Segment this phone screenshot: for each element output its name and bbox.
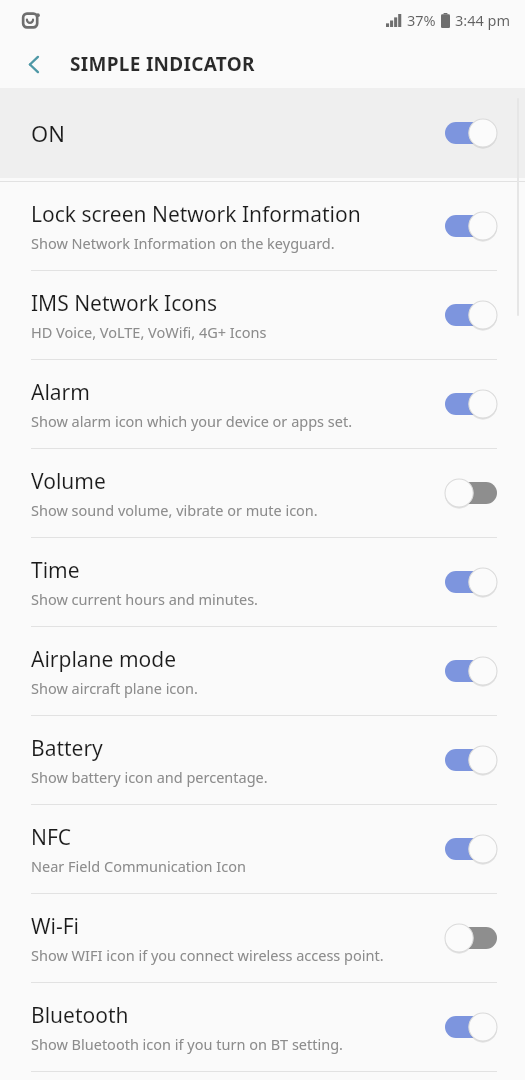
staticText: Show battery icon and percentage. <box>31 767 268 787</box>
staticText: Show WIFI icon if you connect wireless a… <box>31 945 384 965</box>
staticText: ON <box>31 118 65 148</box>
button[interactable]: Toggle on <box>445 211 497 241</box>
button[interactable]: Battery <box>0 716 525 804</box>
staticText: 37% <box>407 10 436 30</box>
button[interactable]: Back <box>14 44 54 84</box>
staticText: Wi-Fi <box>31 912 80 941</box>
button[interactable]: IMS Network Icons <box>0 271 525 359</box>
staticText: Show Bluetooth icon if you turn on BT se… <box>31 1034 343 1054</box>
button[interactable]: Time <box>0 538 525 626</box>
staticText: Show alarm icon which your device or app… <box>31 411 353 431</box>
button[interactable]: Volume <box>0 449 525 537</box>
button[interactable]: Lock screen Network Information <box>0 182 525 270</box>
button[interactable]: Toggle on <box>445 656 497 686</box>
button[interactable]: Toggle off <box>445 478 497 508</box>
staticText: Show current hours and minutes. <box>31 589 258 609</box>
button[interactable]: Toggle on <box>445 118 497 148</box>
button[interactable]: Toggle on <box>445 300 497 330</box>
staticText: Show aircraft plane icon. <box>31 678 198 698</box>
staticText: SIMPLE INDICATOR <box>70 51 255 77</box>
staticText: Volume <box>31 467 106 496</box>
button[interactable]: NFC <box>0 805 525 893</box>
button[interactable]: Toggle on <box>445 389 497 419</box>
staticText: Alarm <box>31 378 90 407</box>
staticText: Time <box>31 556 80 585</box>
staticText: Show sound volume, vibrate or mute icon. <box>31 500 318 520</box>
button[interactable]: Airplane mode <box>0 627 525 715</box>
button[interactable]: Toggle on <box>445 745 497 775</box>
staticText: HD Voice, VoLTE, VoWifi, 4G+ Icons <box>31 322 267 342</box>
staticText: Show Network Information on the keyguard… <box>31 233 335 253</box>
button[interactable]: Wi-Fi <box>0 894 525 982</box>
staticText: Lock screen Network Information <box>31 200 361 229</box>
staticText: Airplane mode <box>31 645 177 674</box>
button[interactable]: Bluetooth <box>0 983 525 1071</box>
staticText: IMS Network Icons <box>31 289 218 318</box>
staticText: Near Field Communication Icon <box>31 856 246 876</box>
staticText: 3:44 pm <box>455 10 511 30</box>
button[interactable]: Toggle on <box>445 1012 497 1042</box>
staticText: Battery <box>31 734 103 763</box>
button[interactable]: ON <box>0 88 525 178</box>
staticText: NFC <box>31 823 72 852</box>
button[interactable]: Alarm <box>0 360 525 448</box>
button[interactable]: Toggle on <box>445 834 497 864</box>
button[interactable]: Toggle on <box>445 567 497 597</box>
button[interactable]: Toggle off <box>445 923 497 953</box>
staticText: Bluetooth <box>31 1001 129 1030</box>
